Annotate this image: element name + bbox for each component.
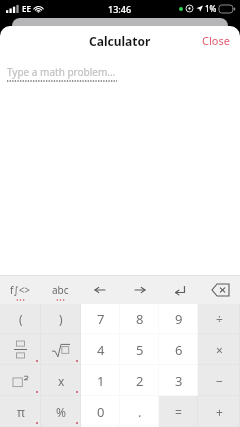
staticText: EE xyxy=(22,3,31,14)
button[interactable]: Left xyxy=(80,276,120,304)
button[interactable]: 4 xyxy=(81,334,120,365)
button[interactable]: 3 xyxy=(159,365,198,396)
staticText: 2 xyxy=(136,372,144,390)
button[interactable]: . xyxy=(120,396,159,427)
button[interactable]: 7 xyxy=(81,304,120,334)
button[interactable]: 2 xyxy=(120,365,159,396)
button[interactable]: = xyxy=(159,396,198,427)
button[interactable]: × xyxy=(198,334,240,365)
button[interactable]: 0 xyxy=(81,396,120,427)
button[interactable]: ÷ xyxy=(198,304,240,334)
staticText: × xyxy=(216,342,223,358)
staticText: 1% xyxy=(205,3,217,14)
button[interactable]: Enter xyxy=(160,276,200,304)
staticText: . xyxy=(138,403,142,421)
staticText: − xyxy=(216,373,223,389)
button[interactable]: 9 xyxy=(159,304,198,334)
staticText: 7 xyxy=(97,310,105,328)
staticText: Type a math problem... xyxy=(7,65,116,79)
staticText: Close xyxy=(202,33,230,48)
staticText: + xyxy=(216,404,223,420)
button[interactable]: + xyxy=(198,396,240,427)
staticText: 5 xyxy=(136,341,144,359)
button[interactable]: − xyxy=(198,365,240,396)
button[interactable]: Square root xyxy=(41,334,81,365)
staticText: 9 xyxy=(175,310,183,328)
staticText: 13:46 xyxy=(108,3,132,15)
staticText: π xyxy=(17,404,25,420)
button[interactable]: abc xyxy=(40,276,80,304)
button[interactable]: Backspace xyxy=(200,276,240,304)
button[interactable]: 1 xyxy=(81,365,120,396)
staticText: ( xyxy=(19,311,23,327)
button[interactable]: % xyxy=(41,396,81,427)
staticText: Calculator xyxy=(89,33,151,49)
staticText: = xyxy=(175,404,182,420)
staticText: 0 xyxy=(97,403,105,421)
staticText: 1 xyxy=(97,372,105,390)
staticText: % xyxy=(56,404,66,420)
staticText: 4 xyxy=(97,341,105,359)
button[interactable]: 6 xyxy=(159,334,198,365)
button[interactable]: ( xyxy=(0,304,41,334)
staticText: ) xyxy=(59,311,63,327)
button[interactable]: Power xyxy=(0,365,41,396)
staticText: 8 xyxy=(136,310,144,328)
button[interactable]: Right xyxy=(120,276,160,304)
button[interactable]: 8 xyxy=(120,304,159,334)
button[interactable]: x xyxy=(41,365,81,396)
button[interactable]: Type a math problem... xyxy=(7,65,117,82)
button[interactable]: π xyxy=(0,396,41,427)
staticText: abc xyxy=(52,283,69,297)
staticText: 3 xyxy=(175,372,183,390)
staticText: x xyxy=(58,373,65,389)
button[interactable]: f∫<> xyxy=(0,276,40,304)
button[interactable]: Fraction xyxy=(0,334,41,365)
button[interactable]: Close xyxy=(192,27,240,54)
button[interactable]: ) xyxy=(41,304,81,334)
staticText: ÷ xyxy=(216,311,223,327)
button[interactable]: 5 xyxy=(120,334,159,365)
staticText: 6 xyxy=(175,341,183,359)
staticText: f∫<> xyxy=(10,283,31,297)
